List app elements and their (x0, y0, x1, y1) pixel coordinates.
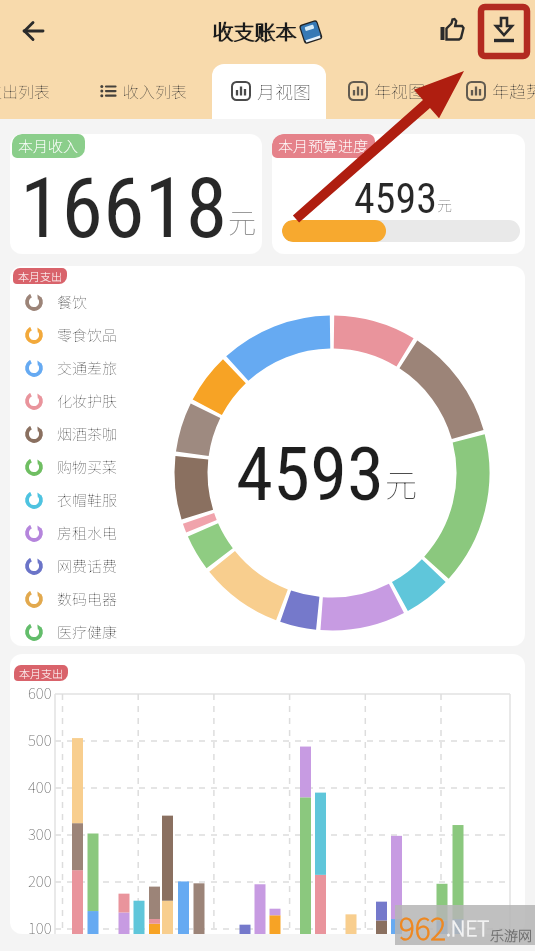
staticText: 餐饮 (57, 291, 88, 313)
button[interactable]: 零食饮品 (25, 318, 118, 351)
button[interactable]: 医疗健康 (25, 615, 118, 646)
button[interactable]: 房租水电 (25, 516, 118, 549)
staticText: 衣帽鞋服 (57, 489, 118, 511)
button[interactable]: 本月收入 (10, 134, 262, 254)
staticText: 年趋势 (492, 78, 535, 103)
button[interactable]: 年趋势 (466, 62, 535, 119)
staticText: 收支账本 (213, 16, 297, 46)
staticText: 收入列表 (123, 79, 188, 102)
staticText: 元 (385, 460, 418, 506)
staticText: 医疗健康 (57, 621, 118, 643)
staticText: 100 (28, 917, 52, 934)
staticText: 600 (28, 682, 52, 704)
staticText: 烟酒茶咖 (57, 423, 118, 445)
button[interactable] (481, 7, 527, 56)
staticText: 乐游网 (490, 925, 532, 945)
staticText: 房租水电 (57, 522, 118, 544)
staticText: 500 (28, 729, 52, 751)
staticText: 化妆护肤 (57, 390, 118, 412)
staticText: 月视图 (257, 78, 311, 104)
staticText: 本月支出 (18, 268, 62, 284)
staticText: 交通差旅 (57, 357, 118, 379)
staticText: 本月支出 (19, 665, 63, 681)
button[interactable]: 衣帽鞋服 (25, 483, 118, 516)
staticText: 元 (437, 194, 453, 216)
button[interactable]: 支出列表 (0, 62, 51, 119)
staticText: 200 (28, 870, 52, 892)
button[interactable]: 化妆护肤 (25, 384, 118, 417)
staticText: 4593 (354, 174, 437, 223)
button[interactable]: 烟酒茶咖 (25, 417, 118, 450)
staticText: 962 (399, 905, 446, 945)
staticText: 购物买菜 (57, 456, 118, 478)
button[interactable]: 年视图 (348, 62, 425, 119)
staticText: 数码电器 (57, 588, 118, 610)
button[interactable] (14, 12, 52, 50)
staticText: 4593 (236, 430, 385, 518)
button[interactable]: 收入列表 (99, 62, 188, 119)
button[interactable]: 交通差旅 (25, 351, 118, 384)
staticText: 300 (28, 823, 52, 845)
staticText: .NET (446, 912, 490, 942)
staticText: 本月预算进度 (278, 135, 369, 157)
staticText: 元 (228, 201, 257, 242)
staticText: 网费话费 (57, 555, 118, 577)
staticText: 本月收入 (18, 135, 79, 157)
staticText: 收支账本 (212, 16, 296, 46)
staticText: 400 (28, 776, 52, 798)
button[interactable]: 餐饮 (25, 285, 88, 318)
staticText: 支出列表 (0, 79, 51, 102)
button[interactable]: 购物买菜 (25, 450, 118, 483)
button[interactable]: 数码电器 (25, 582, 118, 615)
button[interactable] (435, 14, 471, 50)
button[interactable]: 本月预算进度 (272, 134, 525, 254)
button[interactable]: 网费话费 (25, 549, 118, 582)
staticText: 16618 (20, 159, 228, 254)
staticText: 零食饮品 (57, 324, 118, 346)
button[interactable]: 月视图 (231, 62, 311, 119)
staticText: 年视图 (374, 78, 425, 103)
